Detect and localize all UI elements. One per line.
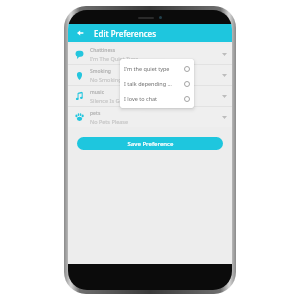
button[interactable]: pets: [68, 107, 232, 127]
staticText: music: [90, 89, 105, 96]
button[interactable]: I'm the quiet type: [120, 61, 194, 76]
staticText: Silence Is Golden: [90, 97, 135, 104]
staticText: Edit Preferences: [94, 28, 157, 39]
staticText: No Smoking: [90, 76, 122, 83]
staticText: I love to chat: [124, 95, 182, 102]
staticText: Save Preference: [127, 140, 174, 148]
button[interactable]: Save Preference: [77, 137, 223, 150]
staticText: I'm the quiet type: [124, 65, 182, 72]
button[interactable]: Smoking: [68, 65, 232, 85]
staticText: No Pets Please: [90, 118, 129, 125]
button[interactable]: I talk depending …: [120, 76, 194, 91]
button[interactable]: Chattiness: [68, 44, 232, 64]
staticText: I'm The Quiet Type: [90, 55, 139, 62]
staticText: pets: [90, 110, 101, 117]
button[interactable]: I love to chat: [120, 91, 194, 106]
button[interactable]: music: [68, 86, 232, 106]
staticText: I talk depending …: [124, 80, 182, 87]
button[interactable]: Back: [74, 27, 86, 39]
staticText: Smoking: [90, 68, 111, 75]
staticText: Chattiness: [90, 47, 116, 54]
